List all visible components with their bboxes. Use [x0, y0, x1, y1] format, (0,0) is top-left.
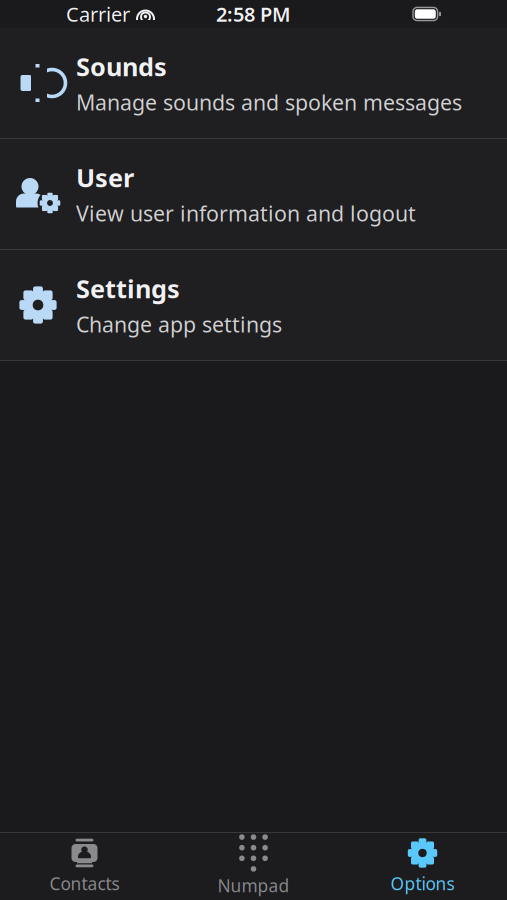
staticText: Settings: [76, 271, 180, 305]
staticText: Numpad: [217, 874, 289, 897]
button[interactable]: Numpad: [169, 833, 338, 900]
staticText: Manage sounds and spoken messages: [76, 88, 462, 116]
staticText: Sounds: [76, 49, 167, 83]
staticText: View user information and logout: [76, 199, 416, 227]
button[interactable]: Options: [338, 833, 507, 900]
button[interactable]: Sounds: [0, 28, 507, 139]
staticText: 2:58 PM: [216, 1, 291, 27]
staticText: Change app settings: [76, 310, 282, 338]
button[interactable]: User: [0, 139, 507, 250]
staticText: Carrier: [66, 1, 130, 27]
button[interactable]: Contacts: [0, 833, 169, 900]
staticText: Options: [390, 872, 454, 895]
staticText: User: [76, 160, 134, 194]
button[interactable]: Settings: [0, 250, 507, 361]
staticText: Contacts: [49, 872, 119, 895]
